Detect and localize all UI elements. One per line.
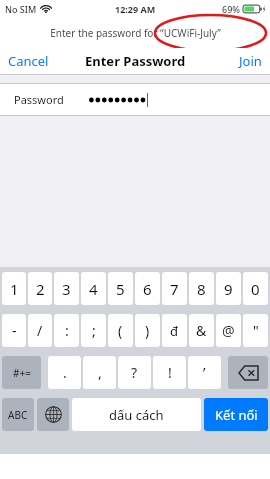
staticText: 9 bbox=[224, 279, 233, 299]
button[interactable]: 8 bbox=[189, 272, 214, 305]
staticText: No SIM bbox=[5, 3, 37, 15]
button[interactable]: Cancel bbox=[0, 49, 57, 73]
button[interactable]: , bbox=[83, 356, 116, 389]
staticText: ’ bbox=[203, 363, 206, 382]
staticText: Password bbox=[14, 92, 64, 107]
button[interactable]: 2 bbox=[28, 272, 52, 305]
staticText: 12:29 AM bbox=[115, 3, 156, 15]
staticText: ? bbox=[131, 363, 138, 382]
button[interactable]: / bbox=[28, 314, 52, 347]
staticText: " bbox=[253, 321, 259, 340]
button[interactable]: 6 bbox=[135, 272, 160, 305]
staticText: ; bbox=[92, 321, 96, 340]
button[interactable]: 4 bbox=[81, 272, 106, 305]
button[interactable]: @ bbox=[216, 314, 241, 347]
button[interactable]: . bbox=[48, 356, 81, 389]
staticText: ( bbox=[118, 321, 123, 340]
staticText: : bbox=[65, 321, 69, 340]
staticText: 6 bbox=[143, 279, 152, 299]
button[interactable]: ( bbox=[108, 314, 133, 347]
button[interactable]: 9 bbox=[216, 272, 241, 305]
staticText: & bbox=[196, 321, 207, 340]
staticText: 69% bbox=[222, 3, 240, 15]
button[interactable]: ABC bbox=[2, 398, 34, 431]
button[interactable]: 1 bbox=[2, 272, 26, 305]
button[interactable]: Change keyboard language bbox=[37, 398, 69, 431]
button[interactable]: : bbox=[54, 314, 79, 347]
staticText: - bbox=[12, 321, 17, 340]
staticText: . bbox=[63, 363, 67, 382]
staticText: 3 bbox=[62, 279, 71, 299]
button[interactable]: ’ bbox=[188, 356, 221, 389]
staticText: Cancel bbox=[8, 52, 49, 70]
staticText: 5 bbox=[116, 279, 125, 299]
button[interactable]: Password bbox=[0, 84, 270, 115]
button[interactable]: ; bbox=[81, 314, 106, 347]
button[interactable]: ) bbox=[135, 314, 160, 347]
staticText: 4 bbox=[89, 279, 98, 299]
button[interactable]: #+= bbox=[2, 356, 41, 389]
button[interactable]: 0 bbox=[243, 272, 268, 305]
staticText: ! bbox=[168, 363, 172, 382]
staticText: @ bbox=[222, 321, 235, 340]
button[interactable]: ? bbox=[118, 356, 151, 389]
staticText: 1 bbox=[10, 279, 19, 299]
staticText: Enter Password bbox=[85, 52, 186, 70]
button[interactable]: " bbox=[243, 314, 268, 347]
staticText: #+= bbox=[13, 366, 31, 380]
staticText: ) bbox=[145, 321, 150, 340]
staticText: 8 bbox=[197, 279, 206, 299]
staticText: Kết nối bbox=[215, 406, 258, 424]
button[interactable]: Kết nối bbox=[204, 398, 268, 431]
staticText: 7 bbox=[170, 279, 179, 299]
button[interactable]: & bbox=[189, 314, 214, 347]
button[interactable]: dấu cách bbox=[72, 398, 201, 431]
staticText: 2 bbox=[36, 279, 45, 299]
staticText: dấu cách bbox=[109, 406, 164, 424]
staticText: Join bbox=[239, 52, 262, 70]
staticText: ABC bbox=[8, 408, 28, 422]
staticText: đ bbox=[170, 322, 179, 340]
button[interactable]: Backspace bbox=[228, 356, 268, 389]
button[interactable]: ! bbox=[153, 356, 186, 389]
button[interactable]: Join bbox=[231, 49, 270, 73]
staticText: Enter the password for “UCWiFi-July” bbox=[50, 26, 221, 40]
staticText: 0 bbox=[251, 279, 260, 299]
button[interactable]: 5 bbox=[108, 272, 133, 305]
button[interactable]: 3 bbox=[54, 272, 79, 305]
button[interactable]: - bbox=[2, 314, 26, 347]
staticText: / bbox=[37, 321, 43, 340]
button[interactable]: 7 bbox=[162, 272, 187, 305]
staticText: , bbox=[98, 363, 102, 382]
button[interactable]: đ bbox=[162, 314, 187, 347]
